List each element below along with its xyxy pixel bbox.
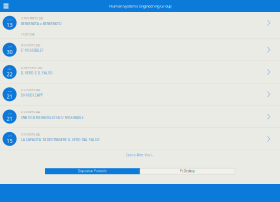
staticText: 30 OTTOBRE 2023 (21, 43, 40, 47)
button[interactable]: OTT (0, 39, 280, 61)
staticText: 15 (7, 137, 13, 145)
staticText: Dispositivo Portatile (78, 169, 107, 173)
staticText: OTT (8, 45, 12, 48)
staticText: IL VERO E IL FALSO (21, 71, 53, 75)
staticText: OTT (8, 89, 12, 93)
staticText: Human Systems Engineering Group (109, 3, 171, 9)
staticText: E' POSSIBILE? (21, 48, 43, 53)
button[interactable]: Dispositivo Portatile (45, 168, 140, 174)
staticText: 15 OTTOBRE 2022 (21, 133, 40, 136)
staticText: NOV (7, 18, 12, 21)
button[interactable]: OTT (0, 106, 280, 128)
staticText: Carica Altre Voci... (125, 153, 154, 157)
staticText: OTT (8, 112, 12, 115)
staticText: 1 RISPOSTA (21, 33, 35, 36)
button[interactable]: FEB (0, 61, 280, 83)
staticText: 22 FEBBRAIO 2023 (21, 66, 42, 69)
button[interactable]: OTT (0, 128, 280, 150)
staticText: 21 OTTOBRE 2022 (21, 110, 40, 114)
staticText: 21 OTTOBRE 2022 (21, 88, 40, 92)
staticText: 13 NOVEMBRE 2023 (21, 17, 43, 20)
button[interactable]: NOV (0, 12, 280, 38)
button[interactable]: OTT (0, 83, 280, 105)
staticText: 22 (7, 71, 13, 78)
staticText: EH VUOI L'APP (21, 93, 43, 97)
staticText: 30 (7, 48, 13, 55)
button[interactable]: Pc Desktop (140, 168, 235, 174)
staticText: 21 (7, 93, 13, 100)
staticText: LA CAPACITA' DI DISTINGUERE IL VERO DAL … (21, 138, 100, 142)
staticText: OTT (8, 134, 12, 137)
staticText: 13 (7, 21, 13, 28)
staticText: 21 (7, 115, 13, 122)
staticText: Pc Desktop (180, 169, 195, 173)
staticText: UNA VITA MERAVIGLIOSA O MISERABILE (21, 115, 84, 120)
staticText: FEB (8, 67, 12, 70)
staticText: BENVENUTA o BENVENUTO (21, 21, 62, 26)
button[interactable]: Menu (0, 0, 12, 12)
button[interactable]: Carica Altre Voci... (110, 151, 170, 159)
